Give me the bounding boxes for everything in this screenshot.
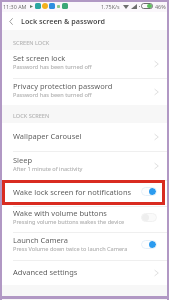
button[interactable]: Toggle on: [141, 240, 157, 249]
staticText: Wallpaper Carousel: [13, 131, 82, 141]
button[interactable]: Toggle on: [141, 187, 157, 196]
button[interactable]: Wake lock screen for notifications: [0, 180, 169, 206]
staticText: After 1 minute of inactivity: [13, 165, 83, 173]
staticText: SCREEN LOCK: [13, 39, 50, 47]
staticText: Wake lock screen for notifications: [13, 187, 132, 197]
staticText: Privacy protection password: [13, 81, 113, 91]
staticText: Set screen lock: [13, 53, 66, 63]
button[interactable]: Set screen lock: [0, 50, 169, 78]
button[interactable]: Toggle off: [141, 213, 157, 222]
button[interactable]: Wake with volume buttons: [0, 206, 169, 232]
staticText: Press Volume down twice to launch Camera: [13, 245, 128, 253]
staticText: Sleep: [13, 155, 33, 165]
staticText: Lock screen & password: [21, 16, 105, 26]
staticText: Wake with volume buttons: [13, 208, 107, 218]
button[interactable]: Wallpaper Carousel: [0, 123, 169, 151]
staticText: LOCK SCREEN: [13, 112, 50, 120]
button[interactable]: Launch Camera: [0, 232, 169, 260]
staticText: Launch Camera: [13, 235, 68, 245]
staticText: 46%: [155, 3, 166, 10]
staticText: Password has been turned off: [13, 91, 92, 99]
button[interactable]: Back: [0, 12, 21, 30]
button[interactable]: Privacy protection password: [0, 78, 169, 105]
staticText: Password has been turned off: [13, 63, 92, 71]
staticText: Pressing volume buttons wakes the device: [13, 218, 125, 226]
button[interactable]: Sleep: [0, 151, 169, 180]
button[interactable]: Advanced settings: [0, 260, 169, 285]
staticText: 1.75K/s: [101, 3, 120, 10]
staticText: Advanced settings: [13, 267, 78, 277]
staticText: 11:30 AM: [3, 3, 27, 10]
